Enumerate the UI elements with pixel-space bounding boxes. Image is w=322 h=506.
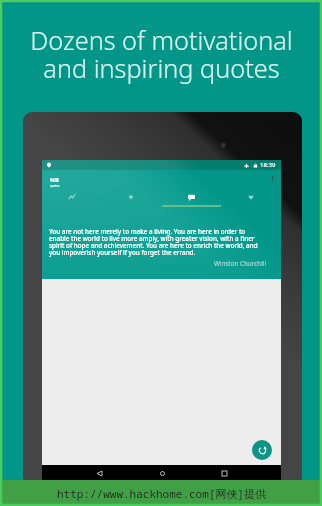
button[interactable]: Recents [218, 467, 230, 479]
staticText: 18:39 [260, 161, 276, 169]
button[interactable]: Refresh [252, 440, 272, 460]
staticText: You are not here merely to make a living… [49, 227, 266, 257]
button[interactable]: Favorites [101, 189, 161, 211]
button[interactable]: Share [42, 189, 101, 211]
staticText: Winston Churchill [49, 259, 266, 268]
staticText: http://www.hackhome.com[网侠]提供 [57, 486, 266, 501]
staticText: NB [50, 176, 59, 184]
staticText: quotes [50, 184, 60, 188]
staticText: Dozens of motivational and inspiring quo… [30, 23, 293, 86]
button[interactable]: Quotes [161, 189, 221, 211]
button[interactable]: More options [270, 174, 275, 183]
button[interactable]: Back [93, 467, 105, 479]
button[interactable]: Home [156, 467, 168, 479]
button[interactable]: Liked [221, 189, 281, 211]
